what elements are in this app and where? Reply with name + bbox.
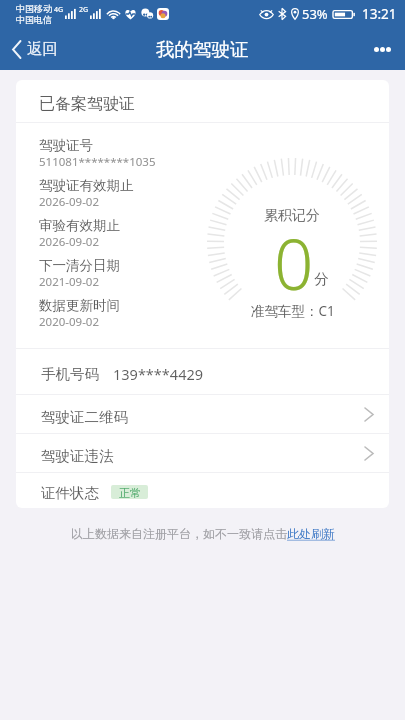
staticText: 驾驶证号 <box>39 137 93 154</box>
staticText: 驾驶证有效期止 <box>39 177 134 194</box>
staticText: 2021-09-02 <box>39 274 100 290</box>
staticText: 分 <box>314 270 329 288</box>
staticText: 53% <box>302 5 328 23</box>
staticText: 2020-09-02 <box>39 314 100 330</box>
button[interactable]: 证件状态 <box>16 473 389 508</box>
staticText: 已备案驾驶证 <box>39 94 135 114</box>
staticText: 审验有效期止 <box>39 217 120 234</box>
staticText: 驾驶证违法 <box>41 447 114 465</box>
staticText: 证件状态 <box>41 484 99 502</box>
staticText: 驾驶证二维码 <box>41 408 128 426</box>
staticText: 2026-09-02 <box>39 194 100 210</box>
staticText: 返回 <box>27 39 58 59</box>
staticText: 4G <box>54 5 64 15</box>
staticText: 2026-09-02 <box>39 234 100 250</box>
staticText: 0 <box>274 216 314 310</box>
button[interactable]: 此处刷新 <box>287 526 335 541</box>
staticText: 2G <box>79 5 89 15</box>
staticText: 中国移动 <box>16 3 52 14</box>
button[interactable]: 返回 <box>0 31 70 67</box>
staticText: 下一清分日期 <box>39 257 120 274</box>
staticText: 准驾车型：C1 <box>251 302 335 320</box>
staticText: 511081********1035 <box>39 154 156 170</box>
button[interactable]: 驾驶证违法 <box>16 434 389 472</box>
staticText: 数据更新时间 <box>39 297 120 314</box>
button[interactable]: 手机号码 <box>16 349 389 394</box>
staticText: 我的驾驶证 <box>156 38 249 61</box>
staticText: 以上数据来自注册平台，如不一致请点击 <box>71 526 287 541</box>
staticText: 累积记分 <box>264 207 320 225</box>
button[interactable]: 驾驶证二维码 <box>16 395 389 433</box>
staticText: 正常 <box>119 486 141 499</box>
staticText: 手机号码 <box>41 365 99 383</box>
staticText: 139****4429 <box>113 364 204 384</box>
button[interactable]: 更多选项 <box>360 35 405 64</box>
staticText: 13:21 <box>362 5 397 23</box>
staticText: 中国电信 <box>16 14 52 25</box>
